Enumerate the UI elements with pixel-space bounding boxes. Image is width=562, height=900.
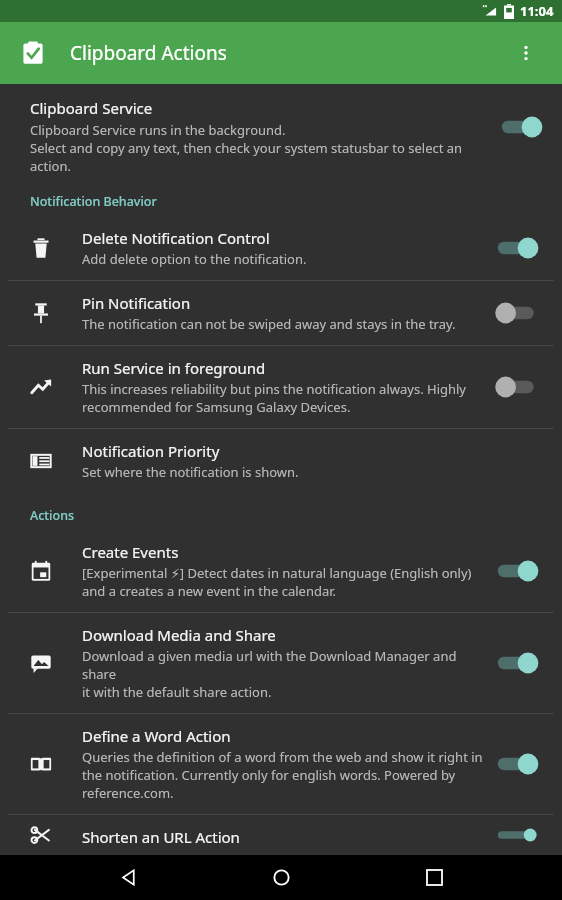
- staticText: Download Media and Share: [82, 625, 276, 645]
- button[interactable]: On: [500, 114, 546, 140]
- button[interactable]: Shorten: [0, 815, 562, 855]
- other: Events: [30, 560, 52, 582]
- staticText: Actions: [30, 507, 75, 524]
- staticText: Notification Priority: [82, 441, 220, 461]
- other: Foreground: [30, 376, 52, 398]
- staticText: Clipboard Service runs in the background…: [30, 121, 463, 175]
- button[interactable]: Recents: [410, 855, 458, 900]
- button[interactable]: On: [496, 827, 542, 843]
- staticText: Pin Notification: [82, 293, 191, 313]
- button[interactable]: Delete: [0, 216, 562, 280]
- button[interactable]: On: [496, 558, 542, 584]
- button[interactable]: App icon: [18, 38, 48, 68]
- staticText: Queries the definition of a word from th…: [82, 748, 483, 802]
- button[interactable]: On: [496, 235, 542, 261]
- staticText: Set where the notification is shown.: [82, 463, 299, 481]
- button[interactable]: Off: [496, 374, 542, 400]
- staticText: Create Events: [82, 542, 179, 562]
- staticText: Notification Behavior: [30, 193, 157, 210]
- staticText: Define a Word Action: [82, 726, 231, 746]
- button[interactable]: On: [496, 751, 542, 777]
- other: Define: [30, 753, 52, 775]
- button[interactable]: Pin: [0, 281, 562, 345]
- staticText: Add delete option to the notification.: [82, 250, 307, 268]
- button[interactable]: Priority: [0, 429, 562, 493]
- button[interactable]: Foreground: [0, 346, 562, 428]
- staticText: Shorten an URL Action: [82, 827, 240, 843]
- other: Priority: [30, 450, 52, 472]
- button[interactable]: Back: [105, 855, 153, 900]
- staticText: Clipboard Actions: [70, 40, 227, 66]
- staticText: Download a given media url with the Down…: [82, 647, 484, 701]
- button[interactable]: Home: [257, 855, 305, 900]
- other: Shorten: [30, 827, 52, 843]
- staticText: Delete Notification Control: [82, 228, 270, 248]
- staticText: Clipboard Service: [30, 98, 153, 118]
- button[interactable]: Events: [0, 530, 562, 612]
- other: Media: [30, 652, 52, 674]
- button[interactable]: More options: [508, 35, 544, 71]
- button[interactable]: Off: [496, 300, 542, 326]
- staticText: [Experimental ⚡] Detect dates in natural…: [82, 564, 472, 600]
- button[interactable]: Media: [0, 613, 562, 713]
- other: Delete: [30, 237, 52, 259]
- staticText: This increases reliability but pins the …: [82, 380, 466, 416]
- button[interactable]: Define: [0, 714, 562, 814]
- staticText: Run Service in foreground: [82, 358, 266, 378]
- staticText: 11:04: [520, 2, 554, 20]
- button[interactable]: On: [496, 650, 542, 676]
- staticText: The notification can not be swiped away …: [82, 315, 456, 333]
- other: Pin: [30, 302, 52, 324]
